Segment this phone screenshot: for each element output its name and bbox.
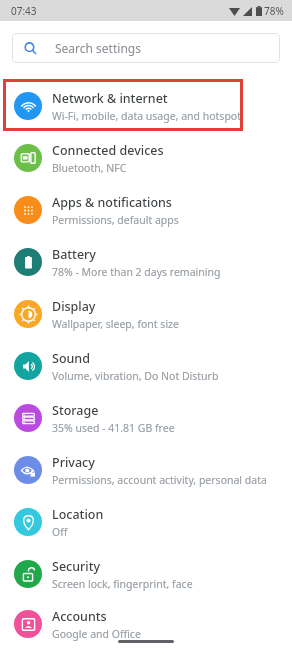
staticText: Location — [52, 506, 104, 523]
staticText: Permissions, default apps — [52, 213, 179, 227]
button[interactable]: Security — [0, 548, 292, 600]
button[interactable]: Connected devices — [0, 132, 292, 184]
staticText: Network & internet — [52, 90, 168, 107]
staticText: Battery — [52, 246, 96, 263]
staticText: 07:43 — [11, 4, 37, 18]
staticText: Google and Office — [52, 627, 141, 641]
staticText: Sound — [52, 350, 90, 367]
button[interactable]: Battery — [0, 236, 292, 288]
staticText: Security — [52, 558, 101, 575]
staticText: Connected devices — [52, 142, 164, 159]
staticText: Permissions, account activity, personal … — [52, 473, 267, 487]
staticText: Search settings — [55, 40, 141, 56]
button[interactable]: Location — [0, 496, 292, 548]
staticText: 35% used - 41.81 GB free — [52, 421, 175, 435]
staticText: Screen lock, fingerprint, face — [52, 577, 193, 591]
button[interactable]: Privacy — [0, 444, 292, 496]
staticText: Accounts — [52, 608, 107, 625]
button[interactable]: Storage — [0, 392, 292, 444]
staticText: Apps & notifications — [52, 194, 172, 211]
button[interactable]: Accounts — [0, 600, 292, 648]
button[interactable]: Sound — [0, 340, 292, 392]
staticText: Volume, vibration, Do Not Disturb — [52, 369, 219, 383]
staticText: Privacy — [52, 454, 95, 471]
button[interactable]: Network & internet — [0, 80, 292, 132]
staticText: Storage — [52, 402, 99, 419]
staticText: Bluetooth, NFC — [52, 161, 127, 175]
staticText: Wallpaper, sleep, font size — [52, 317, 179, 331]
staticText: Display — [52, 298, 96, 315]
staticText: 78% — [264, 4, 284, 18]
button[interactable]: Apps & notifications — [0, 184, 292, 236]
staticText: 78% - More than 2 days remaining — [52, 265, 221, 279]
staticText: Wi-Fi, mobile, data usage, and hotspot — [52, 109, 241, 123]
other: Search — [24, 42, 37, 55]
staticText: Off — [52, 525, 68, 539]
button[interactable]: Display — [0, 288, 292, 340]
button[interactable]: Search — [12, 33, 280, 63]
